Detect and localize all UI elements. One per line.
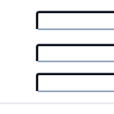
button[interactable] xyxy=(37,76,114,93)
button[interactable] xyxy=(37,44,114,61)
button[interactable] xyxy=(37,12,114,29)
